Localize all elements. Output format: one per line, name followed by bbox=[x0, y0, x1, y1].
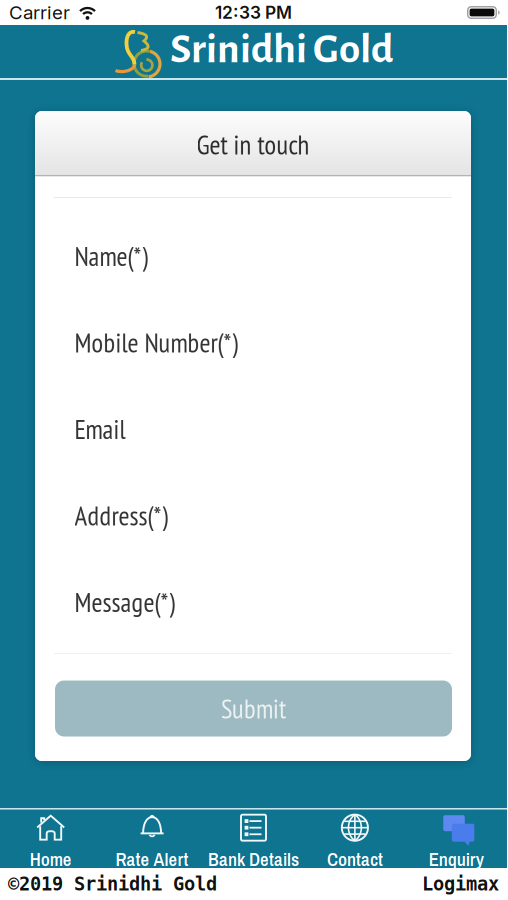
staticText: Message(*) bbox=[74, 585, 174, 619]
staticText: ©2019 Srinidhi Gold bbox=[8, 873, 217, 895]
staticText: Rate Alert bbox=[116, 847, 189, 872]
button[interactable]: Enquiry bbox=[406, 806, 507, 872]
staticText: 12:33 PM bbox=[215, 2, 292, 23]
button[interactable]: Contact bbox=[304, 806, 406, 872]
staticText: Carrier bbox=[9, 1, 70, 24]
staticText: Address(*) bbox=[74, 498, 167, 533]
button[interactable]: Mobile Number(*) bbox=[35, 329, 471, 356]
button[interactable]: Name(*) bbox=[35, 242, 471, 269]
staticText: Name(*) bbox=[74, 239, 147, 273]
button[interactable]: Home bbox=[0, 806, 101, 872]
button[interactable]: Message(*) bbox=[35, 588, 471, 615]
button[interactable]: Get in touch bbox=[35, 111, 471, 175]
staticText: Enquiry bbox=[429, 847, 484, 872]
staticText: Contact bbox=[327, 847, 383, 872]
staticText: Email bbox=[74, 412, 125, 446]
button[interactable]: Email bbox=[35, 415, 471, 442]
button[interactable]: Bank Details bbox=[203, 806, 304, 872]
button[interactable]: Submit bbox=[55, 680, 452, 736]
staticText: Get in touch bbox=[196, 127, 309, 162]
staticText: Bank Details bbox=[208, 847, 299, 872]
staticText: Mobile Number(*) bbox=[74, 325, 237, 360]
staticText: Srinidhi Gold bbox=[170, 0, 393, 109]
staticText: Home bbox=[30, 847, 72, 872]
button[interactable]: Address(*) bbox=[35, 502, 471, 529]
staticText: Logimax bbox=[422, 873, 499, 895]
button[interactable]: Rate Alert bbox=[101, 806, 203, 872]
staticText: Submit bbox=[221, 691, 286, 726]
